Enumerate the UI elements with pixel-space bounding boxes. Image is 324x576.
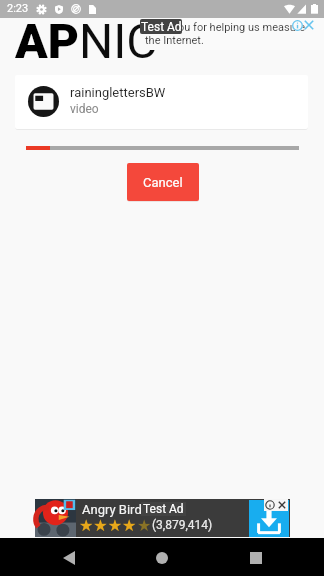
button[interactable]: raininglettersBW (15, 75, 308, 129)
staticText: Angry Birds Go! (82, 502, 172, 517)
button[interactable]: Cancel (127, 163, 199, 201)
staticText: NIC (79, 13, 158, 69)
staticText: ★★★★ (79, 516, 137, 535)
staticText: ou for helping us measure (178, 21, 306, 34)
button[interactable]: Home (148, 544, 176, 572)
button[interactable]: Install (249, 500, 289, 537)
staticText: AP (15, 13, 79, 69)
button[interactable]: Back (55, 544, 83, 572)
button[interactable]: Close ad (276, 499, 288, 511)
button[interactable]: Test Ad (141, 502, 186, 516)
button[interactable]: Ad info (292, 20, 303, 31)
button[interactable]: Ad info (264, 499, 276, 511)
staticText: 2:23 (7, 2, 29, 15)
staticText: (3,879,414) (152, 518, 213, 532)
button[interactable]: Test Ad (140, 19, 182, 34)
button[interactable]: Recent apps (242, 544, 270, 572)
staticText: Cancel (143, 175, 183, 190)
staticText: ★ (137, 516, 152, 535)
staticText: Test Ad (143, 502, 184, 516)
button[interactable] (35, 499, 290, 537)
staticText: the Internet. (145, 34, 204, 47)
staticText: Test Ad (141, 20, 182, 34)
staticText: raininglettersBW (70, 85, 166, 100)
button[interactable]: Close ad (304, 20, 314, 30)
staticText: video (70, 102, 99, 116)
